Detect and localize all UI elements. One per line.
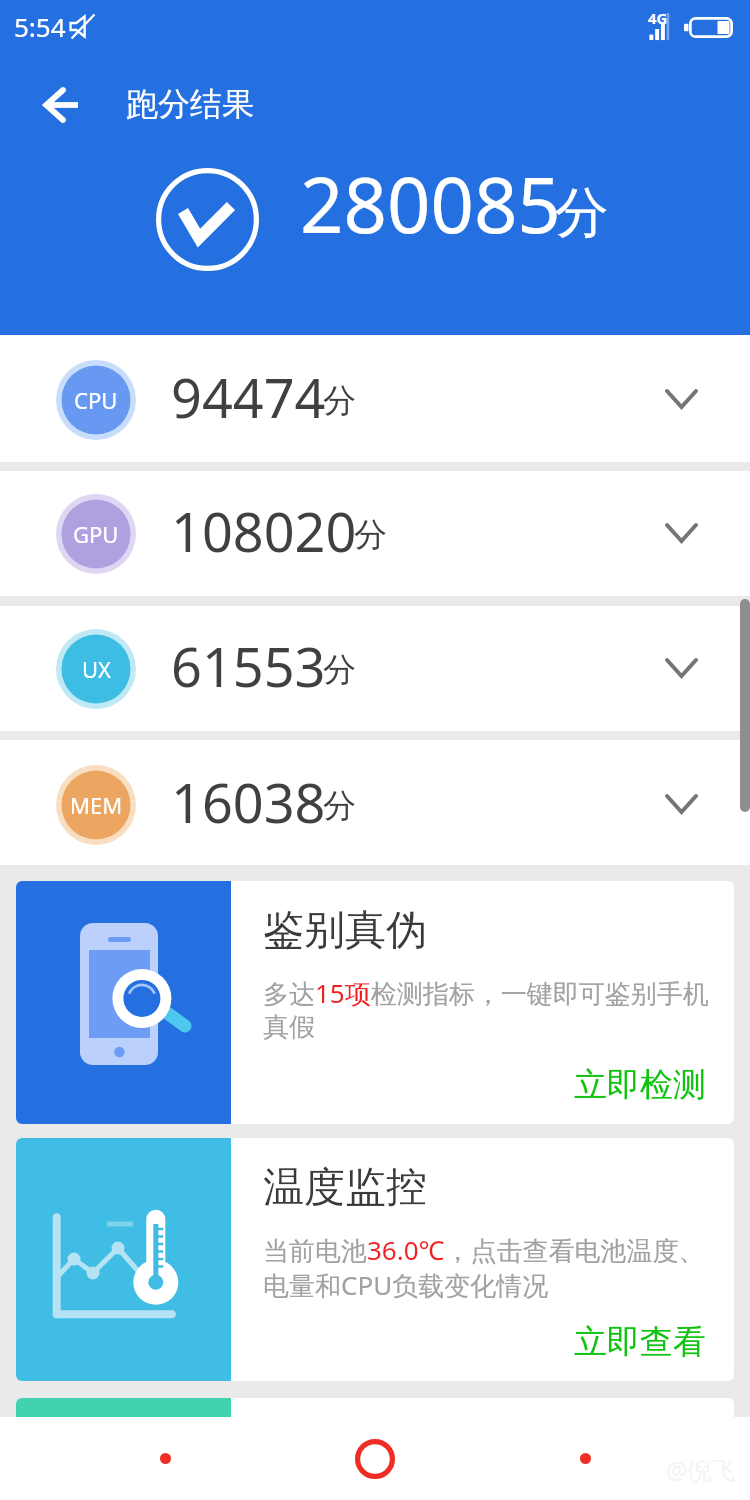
button[interactable]: Recents [540,1417,630,1500]
staticText: 4G [648,8,668,28]
staticText: 立即查看 [574,1321,706,1363]
staticText: 分 [323,380,356,422]
button[interactable]: MEM [0,740,750,865]
staticText: @倪飞 [666,1453,736,1486]
button[interactable]: Back [30,76,92,134]
button[interactable]: Expand [643,371,719,427]
button[interactable]: GPU [0,471,750,596]
staticText: 鉴别真伪 [263,905,427,957]
staticText: GPU [73,519,119,549]
staticText: 立即检测 [574,1064,706,1106]
staticText: 5:54 [14,9,66,44]
staticText: 分 [323,649,356,691]
button[interactable]: 温度监控 [16,1138,734,1381]
staticText: 温度监控 [263,1162,427,1214]
button[interactable]: Back [120,1417,210,1500]
button[interactable]: CPU [0,335,750,462]
button[interactable]: Home [330,1417,420,1500]
staticText: CPU [74,385,118,415]
staticText: 16038 [171,765,326,839]
staticText: 108020 [171,494,357,568]
staticText: 94474 [171,360,326,434]
button[interactable] [16,1398,734,1418]
staticText: MEM [70,790,123,820]
staticText: 分 [555,179,609,247]
button[interactable]: Expand [643,640,719,696]
staticText: 当前电池36.0℃，点击查看电池温度、电量和CPU负载变化情况 [263,1232,721,1302]
button[interactable]: UX [0,606,750,731]
staticText: 61553 [171,629,326,703]
staticText: 分 [354,514,387,556]
staticText: 跑分结果 [126,84,254,124]
staticText: 280085 [300,152,561,256]
staticText: UX [82,654,111,684]
button[interactable]: 鉴别真伪 [16,881,734,1124]
staticText: 分 [323,785,356,827]
button[interactable]: Expand [643,505,719,561]
button[interactable]: Expand [643,776,719,832]
staticText: 多达15项检测指标，一键即可鉴别手机真假 [263,975,721,1044]
